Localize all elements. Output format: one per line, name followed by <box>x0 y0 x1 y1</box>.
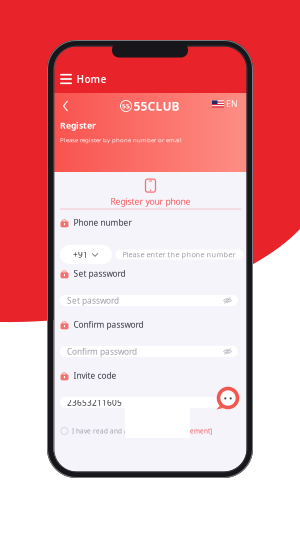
staticText: Please enter the phone number <box>122 249 235 259</box>
staticText: Home <box>76 72 106 86</box>
staticText: Please register by phone number or email <box>60 136 182 144</box>
staticText: Set password <box>73 268 125 279</box>
staticText: Set password <box>67 295 119 306</box>
staticText: Register <box>60 120 96 131</box>
staticText: Register your phone <box>110 196 190 207</box>
staticText: Confirm password <box>67 346 137 357</box>
staticText: I have read and agree <box>72 427 145 435</box>
button[interactable]: Menu <box>55 68 77 90</box>
button[interactable]: I have read and agree <box>61 425 240 437</box>
button[interactable]: Back <box>59 99 73 113</box>
staticText: +91 <box>73 249 88 260</box>
staticText: Invite code <box>73 370 116 381</box>
staticText: [Privacy Agreement] <box>149 427 212 435</box>
button[interactable]: +91 <box>60 245 112 264</box>
staticText: Confirm password <box>73 319 143 330</box>
staticText: 55 <box>122 101 130 111</box>
button[interactable]: Register your phone <box>95 178 205 208</box>
staticText: EN <box>226 98 238 110</box>
staticText: 55CLUB <box>133 98 179 114</box>
button[interactable]: Support chat <box>214 386 240 412</box>
staticText: Phone number <box>73 217 131 228</box>
staticText: 23653211605 <box>67 397 122 408</box>
button[interactable]: Language <box>210 98 240 110</box>
